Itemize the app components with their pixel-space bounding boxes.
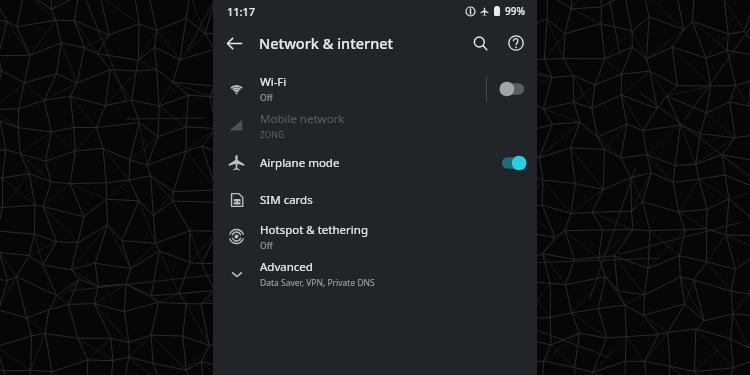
- staticText: Hotspot & tethering: [260, 222, 368, 238]
- staticText: Off: [260, 92, 273, 104]
- staticText: SIM cards: [260, 192, 313, 208]
- button[interactable]: Hotspot & tethering: [213, 218, 537, 255]
- button[interactable]: Help: [499, 24, 533, 62]
- button[interactable]: Wi-Fi: [213, 70, 537, 107]
- button[interactable]: Toggle on: [499, 155, 527, 171]
- staticText: ZONG: [260, 129, 285, 141]
- staticText: Off: [260, 240, 273, 252]
- button[interactable]: SIM cards: [213, 181, 537, 218]
- button[interactable]: Back: [213, 22, 255, 64]
- button[interactable]: Mobile network: [213, 107, 537, 144]
- button[interactable]: Advanced: [213, 255, 537, 292]
- button[interactable]: Search: [461, 24, 499, 62]
- staticText: Advanced: [260, 259, 313, 275]
- staticText: Airplane mode: [260, 155, 340, 171]
- staticText: Mobile network: [260, 111, 345, 127]
- staticText: 11:17: [227, 4, 256, 19]
- staticText: Network & internet: [259, 33, 394, 53]
- button[interactable]: Toggle off: [499, 81, 527, 97]
- button[interactable]: Airplane mode: [213, 144, 537, 181]
- staticText: Data Saver, VPN, Private DNS: [260, 277, 375, 289]
- staticText: 99%: [505, 4, 525, 18]
- staticText: Wi-Fi: [260, 74, 287, 90]
